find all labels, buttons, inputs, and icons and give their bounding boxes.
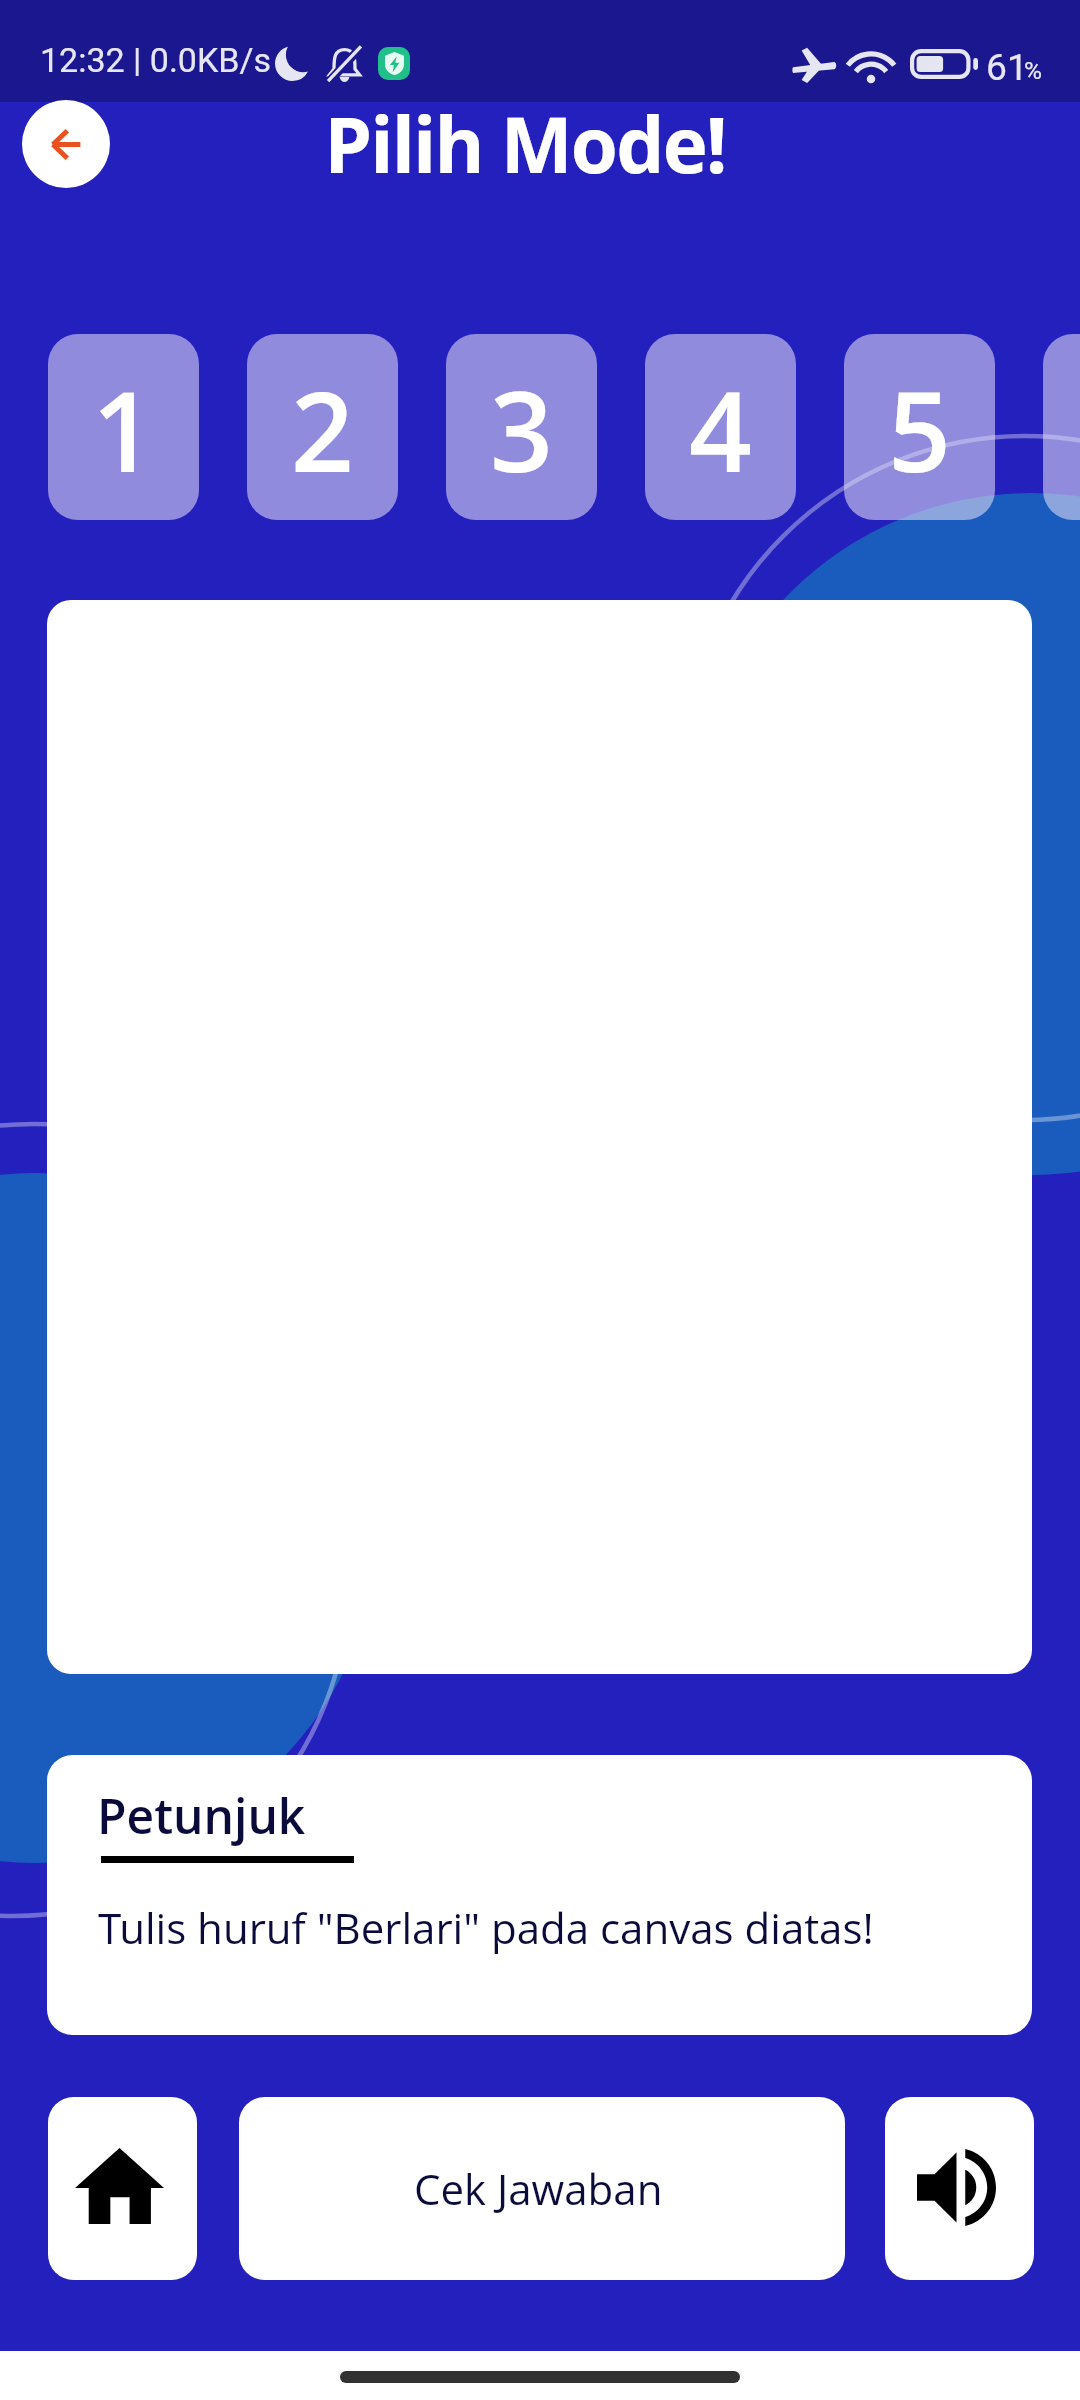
staticText: 5 — [888, 354, 951, 504]
button[interactable]: Play sound — [885, 2097, 1034, 2280]
button[interactable] — [47, 600, 1032, 1674]
staticText: Cek Jawaban — [414, 2160, 663, 2217]
button[interactable]: 4 — [645, 334, 796, 520]
staticText: Tulis huruf "Berlari" pada canvas diatas… — [98, 1899, 874, 1956]
button[interactable]: 2 — [247, 334, 398, 520]
button[interactable]: Home — [48, 2097, 197, 2280]
button[interactable]: 3 — [446, 334, 597, 520]
staticText: 2 — [291, 354, 354, 504]
staticText: 3 — [490, 354, 553, 504]
staticText: 61 — [986, 45, 1028, 89]
staticText: Pilih Mode! — [0, 92, 1065, 196]
staticText: 12:32 | 0.0KB/s — [40, 40, 272, 80]
button[interactable]: Back — [22, 100, 110, 188]
button[interactable]: 6 — [1043, 334, 1080, 520]
staticText: % — [1024, 56, 1043, 85]
staticText: 1 — [92, 354, 155, 504]
button[interactable]: 5 — [844, 334, 995, 520]
button[interactable]: Cek Jawaban — [239, 2097, 845, 2280]
staticText: Petunjuk — [97, 1783, 306, 1848]
button[interactable]: 1 — [48, 334, 199, 520]
staticText: 4 — [689, 354, 752, 504]
